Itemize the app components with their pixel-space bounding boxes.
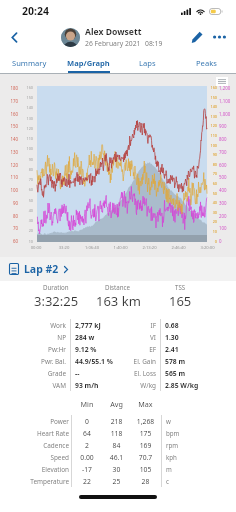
staticText: 00:00 — [22, 245, 50, 251]
staticText: 100 — [208, 143, 217, 148]
staticText: Cadence — [0, 441, 69, 450]
staticText: 500 — [219, 174, 234, 180]
staticText: 2:46:40 — [164, 245, 193, 251]
staticText: 118 — [102, 429, 131, 438]
staticText: 100 — [4, 187, 18, 193]
staticText: El. Gain — [118, 357, 156, 366]
staticText: 2,777 kJ — [75, 321, 101, 330]
staticText: 1,000 — [219, 111, 234, 117]
staticText: 30 — [102, 465, 131, 474]
staticText: 163 km — [96, 292, 141, 310]
staticText: 160 — [4, 111, 18, 117]
staticText: 120 — [21, 126, 33, 131]
staticText: -17 — [72, 465, 102, 474]
staticText: 40 — [208, 200, 217, 205]
staticText: 110 — [4, 174, 18, 180]
button[interactable]: Chart legend — [216, 77, 228, 86]
staticText: 26 February 2021 — [85, 39, 141, 48]
staticText: w — [166, 417, 171, 425]
staticText: 2.41 — [165, 345, 179, 354]
staticText: Avg — [102, 399, 131, 409]
staticText: Speed — [0, 453, 69, 462]
staticText: 90 — [4, 200, 18, 206]
staticText: 20:24 — [22, 4, 49, 18]
staticText: 165 — [169, 292, 192, 310]
staticText: 70 — [4, 225, 18, 231]
staticText: 70 — [21, 177, 33, 182]
staticText: 40 — [21, 208, 33, 213]
staticText: Grade — [0, 369, 66, 378]
staticText: 80 — [4, 213, 18, 219]
staticText: 0.00 — [72, 453, 102, 462]
staticText: 169 — [131, 441, 160, 450]
staticText: NP — [0, 333, 66, 342]
staticText: 578 m — [165, 357, 186, 366]
staticText: c — [166, 477, 169, 485]
button[interactable]: Edit — [186, 26, 208, 48]
button[interactable]: Laps — [118, 52, 177, 73]
staticText: 90 — [21, 157, 33, 162]
staticText: 30 — [208, 210, 217, 215]
staticText: 1:06:40 — [78, 245, 106, 251]
staticText: 130 — [4, 149, 18, 155]
staticText: 105 — [131, 465, 160, 474]
staticText: W/kg — [118, 381, 156, 390]
staticText: 90 — [208, 152, 217, 157]
staticText: 300 — [219, 200, 234, 206]
staticText: 140 — [21, 105, 33, 110]
staticText: Pw:Hr — [0, 345, 66, 354]
staticText: 10 — [208, 229, 217, 234]
staticText: 200 — [219, 213, 234, 219]
button[interactable]: Summary — [0, 52, 59, 73]
staticText: VAM — [0, 381, 66, 390]
button[interactable]: Lap #2 — [0, 257, 236, 281]
staticText: Work — [0, 321, 66, 330]
button[interactable]: Map/Graph — [59, 52, 118, 73]
staticText: 22 — [72, 477, 102, 486]
staticText: 70.7 — [131, 453, 160, 462]
staticText: 900 — [219, 123, 234, 129]
staticText: 20 — [21, 228, 33, 233]
staticText: 700 — [219, 149, 234, 155]
staticText: m — [166, 465, 172, 473]
staticText: 110 — [21, 136, 33, 141]
staticText: 284 w — [75, 333, 95, 342]
staticText: Distance — [105, 283, 131, 291]
staticText: 130 — [21, 116, 33, 121]
staticText: Map/Graph — [67, 58, 110, 68]
staticText: 2 — [72, 441, 102, 450]
staticText: 1,100 — [219, 98, 234, 104]
staticText: 120 — [208, 123, 217, 128]
staticText: 1,268 — [131, 417, 160, 426]
button[interactable]: Peaks — [177, 52, 236, 73]
staticText: 60 — [21, 187, 33, 192]
staticText: 150 — [4, 123, 18, 129]
staticText: Heart Rate — [0, 429, 69, 438]
staticText: 1:40:00 — [106, 245, 135, 251]
staticText: 0.68 — [165, 321, 179, 330]
staticText: 120 — [4, 162, 18, 168]
staticText: 150 — [208, 95, 217, 100]
staticText: 30 — [21, 218, 33, 223]
staticText: 64 — [72, 429, 102, 438]
staticText: 28 — [131, 477, 160, 486]
staticText: TSS — [175, 283, 186, 291]
staticText: 9.12 % — [75, 345, 97, 354]
staticText: Lap #2 — [24, 262, 59, 276]
staticText: IF — [118, 321, 156, 330]
staticText: 44.9/55.1 % — [75, 357, 113, 366]
staticText: kph — [166, 453, 177, 461]
staticText: 84 — [102, 441, 131, 450]
staticText: 46.1 — [102, 453, 131, 462]
staticText: 800 — [219, 136, 234, 142]
staticText: 70 — [208, 171, 217, 176]
staticText: Min — [72, 399, 102, 409]
button[interactable]: More options — [208, 26, 230, 48]
staticText: 60 — [4, 238, 18, 244]
button[interactable]: Back — [3, 26, 25, 48]
staticText: 25 — [102, 477, 131, 486]
staticText: VI — [118, 333, 156, 342]
staticText: 0 — [208, 239, 217, 244]
staticText: 218 — [102, 417, 131, 426]
staticText: 93 m/h — [75, 381, 99, 390]
